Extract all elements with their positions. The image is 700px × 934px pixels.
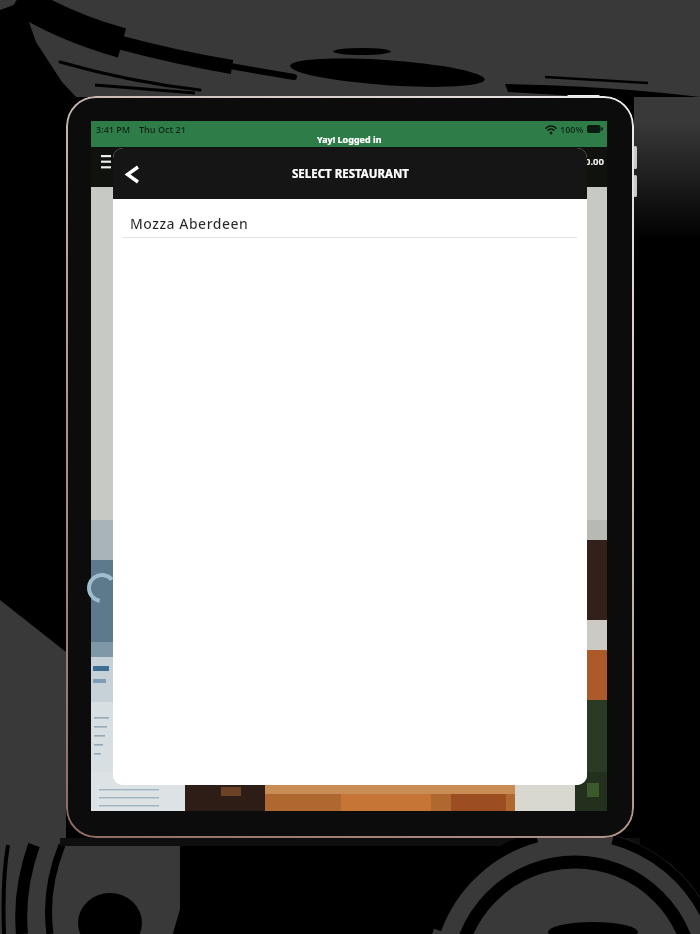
button[interactable]: 0.00 [585, 155, 604, 168]
button[interactable] [98, 153, 114, 169]
staticText: 3:41 PM [96, 123, 131, 135]
staticText: SELECT RESTAURANT [292, 166, 409, 182]
staticText: Thu Oct 21 [139, 123, 186, 135]
staticText: Yay! Logged in [317, 133, 382, 145]
staticText: 100% [560, 123, 584, 135]
button[interactable]: Mozza Aberdeen [113, 199, 587, 237]
button[interactable] [121, 163, 143, 185]
staticText: Mozza Aberdeen [130, 214, 249, 233]
staticText: 0.00 [585, 155, 604, 168]
